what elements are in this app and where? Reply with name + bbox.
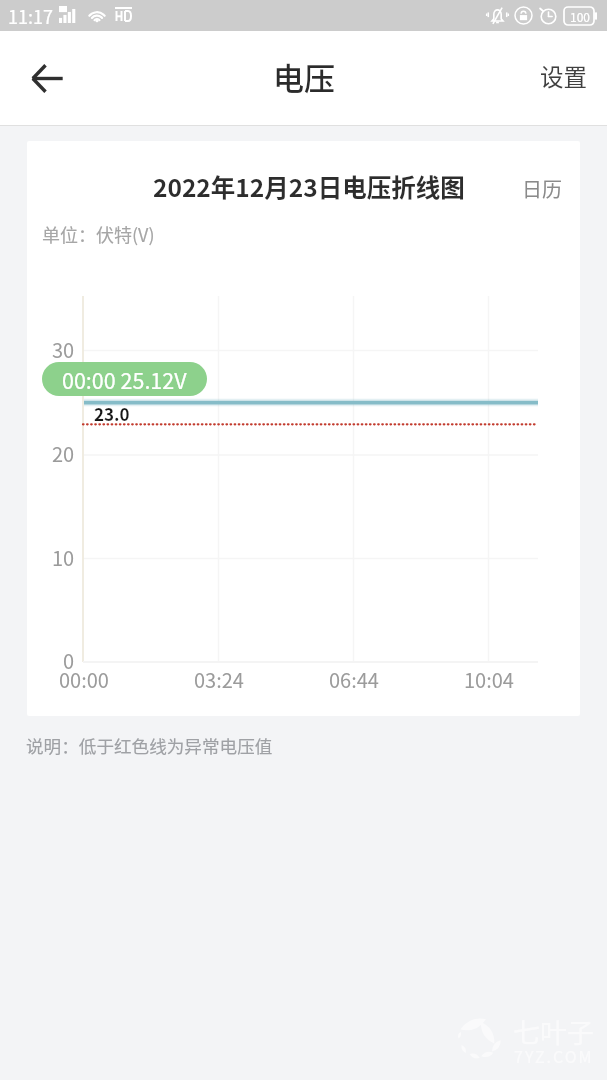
staticText: 11:17: [8, 3, 53, 29]
staticText: 10:04: [464, 665, 514, 694]
staticText: 0: [63, 646, 75, 672]
button[interactable]: 日历: [500, 162, 580, 215]
staticText: 20: [52, 439, 75, 465]
staticText: 2022年12月23日电压折线图: [153, 169, 465, 204]
staticText: 00:00 25.12V: [62, 364, 187, 395]
staticText: 日历: [522, 174, 562, 203]
staticText: 设置: [540, 59, 587, 93]
staticText: 06:44: [329, 665, 379, 694]
staticText: 00:00: [59, 665, 109, 694]
button[interactable]: Back: [14, 45, 80, 111]
staticText: 电压: [273, 54, 335, 99]
staticText: 23.0: [94, 401, 130, 426]
staticText: 单位：伏特(V): [42, 221, 155, 247]
staticText: 10: [52, 543, 75, 569]
button[interactable]: 00:00 25.12V: [42, 362, 207, 396]
button[interactable]: 设置: [518, 31, 607, 101]
staticText: 说明：低于红色线为异常电压值: [26, 733, 273, 758]
staticText: 30: [52, 335, 75, 361]
staticText: 100: [570, 8, 590, 25]
staticText: 03:24: [194, 665, 244, 694]
